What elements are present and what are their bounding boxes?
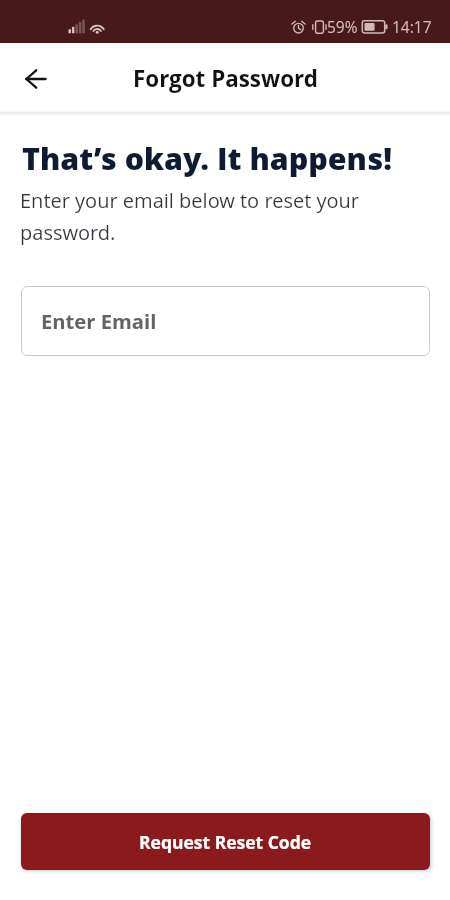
button[interactable]: Back bbox=[15, 57, 59, 101]
staticText: That’s okay. It happens! bbox=[22, 138, 392, 179]
staticText: Enter Email bbox=[41, 307, 157, 335]
button[interactable]: Enter Email bbox=[21, 286, 430, 356]
button[interactable]: Request Reset Code bbox=[21, 813, 430, 870]
staticText: Request Reset Code bbox=[139, 830, 312, 854]
staticText: Forgot Password bbox=[133, 63, 318, 94]
staticText: Enter your email below to reset your pas… bbox=[20, 187, 370, 246]
staticText: 59% bbox=[327, 16, 358, 37]
staticText: 14:17 bbox=[392, 16, 432, 37]
